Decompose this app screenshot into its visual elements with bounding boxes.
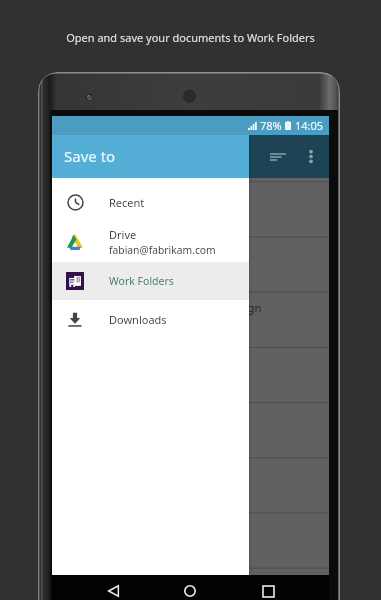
button[interactable]: Drive (52, 221, 249, 262)
staticText: Design (224, 300, 262, 316)
button[interactable]: Recent (52, 183, 249, 221)
staticText: Save to (64, 146, 116, 166)
staticText: Downloads (109, 312, 167, 327)
staticText: fabian@fabrikam.com (109, 243, 216, 257)
button[interactable]: Downloads (52, 300, 249, 338)
button[interactable]: Work Folders (52, 262, 249, 300)
button[interactable]: Sort (261, 135, 295, 178)
button[interactable]: Home (181, 582, 199, 600)
staticText: 14:05 (295, 118, 324, 133)
staticText: Open and save your documents to Work Fol… (66, 30, 315, 45)
button[interactable]: Back (104, 582, 122, 600)
staticText: Recent (109, 195, 145, 210)
staticText: 78% (260, 118, 282, 133)
button[interactable]: Recents (259, 582, 277, 600)
button[interactable]: More options (295, 135, 327, 178)
staticText: Work Folders (109, 274, 174, 288)
staticText: Drive (109, 227, 137, 242)
